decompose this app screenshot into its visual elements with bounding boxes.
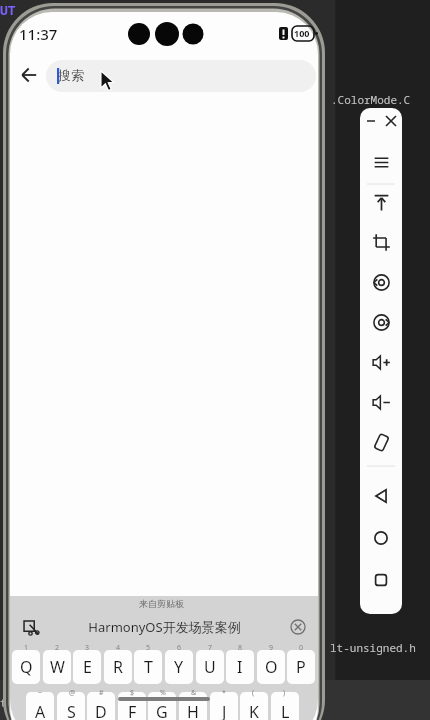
button[interactable]: Crop [365,226,397,258]
button[interactable]: Orientation [365,426,397,458]
button[interactable]: F [118,692,146,720]
button[interactable]: Back [12,58,46,92]
staticText: 搜索 [58,67,84,83]
staticText: S [67,701,76,720]
button[interactable]: Y [165,650,193,684]
button[interactable]: S [57,692,85,720]
staticText: G [156,701,168,720]
button[interactable]: Home [365,522,397,554]
staticText: & [191,688,197,698]
staticText: R [113,656,123,678]
button[interactable]: Upload [365,186,397,218]
staticText: F [128,701,137,720]
button[interactable]: 搜索 [46,60,316,92]
staticText: % [160,688,166,698]
staticText: Y [174,656,184,678]
button[interactable]: Recents [365,564,397,596]
button[interactable]: Back [365,480,397,512]
staticText: E [83,656,92,678]
staticText: K [249,701,259,720]
staticText: P [296,656,306,678]
staticText: 1 [24,643,29,653]
button[interactable]: Minimize [362,112,380,130]
button[interactable]: I [226,650,254,684]
staticText: O [265,656,278,678]
staticText: 2 [55,643,60,653]
button[interactable]: P [287,650,315,684]
staticText: HarmonyOS开发场景案例 [88,618,241,636]
button[interactable]: W [43,650,71,684]
button[interactable]: Clipboard [10,612,318,642]
button[interactable]: Menu [365,146,397,178]
button[interactable]: Q [12,650,40,684]
other: Clipboard [18,615,42,639]
button[interactable]: A [26,692,54,720]
staticText: H [187,701,199,720]
staticText: J [222,701,227,720]
staticText: 100 [294,27,310,39]
staticText: L [281,701,290,720]
staticText: 8 [238,643,243,653]
button[interactable]: R [104,650,132,684]
staticText: A [35,701,46,720]
button[interactable]: L [271,692,299,720]
button[interactable]: Rotate left [365,266,397,298]
staticText: ~ [38,688,43,698]
staticText: 11:37 [19,24,58,44]
button[interactable]: Dismiss [286,615,310,639]
staticText: 7 [208,643,213,653]
staticText: 3 [85,643,90,653]
staticText: # [99,688,104,698]
staticText: 6 [177,643,182,653]
button[interactable]: Volume up [365,346,397,378]
button[interactable]: T [134,650,162,684]
button[interactable]: O [257,650,285,684]
button[interactable]: U [196,650,224,684]
staticText: UT [0,1,16,19]
staticText: 5 [146,643,151,653]
staticText: @ [69,688,76,698]
button[interactable]: E [73,650,101,684]
staticText: * [222,688,226,698]
staticText: ( [252,688,255,698]
staticText: 4 [116,643,121,653]
staticText: .ColorMode.C [331,92,411,107]
button[interactable]: H [179,692,207,720]
button[interactable]: J [210,692,238,720]
staticText: $ [130,688,135,698]
button[interactable]: D [87,692,115,720]
button[interactable]: Close [382,112,400,130]
staticText: W [50,656,65,678]
staticText: Q [20,656,33,678]
staticText: T [144,656,153,678]
button[interactable]: K [240,692,268,720]
button[interactable]: G [148,692,176,720]
staticText: U [204,656,216,678]
staticText: D [95,701,107,720]
staticText: lt-unsigned.h [330,640,416,655]
staticText: 0 [299,643,304,653]
staticText: ) [283,688,286,698]
staticText: tCa [0,695,20,710]
button[interactable]: Volume down [365,386,397,418]
staticText: 9 [269,643,274,653]
staticText: 来自剪贴板 [139,598,184,609]
button[interactable]: Rotate right [365,306,397,338]
staticText: I [237,656,243,678]
